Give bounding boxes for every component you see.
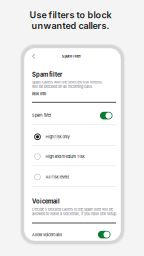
staticText: Spam filter xyxy=(32,113,52,118)
button[interactable]: High and medium risk xyxy=(32,147,116,166)
staticText: All risk levels xyxy=(45,175,69,179)
button[interactable]: Risk info xyxy=(32,91,46,96)
staticText: Decide if blocked callers to the spam fi… xyxy=(32,207,117,216)
staticText: Use filters to block xyxy=(29,9,111,20)
staticText: unwanted callers. xyxy=(31,20,109,31)
staticText: Risk info xyxy=(32,91,46,96)
staticText: High and medium risk xyxy=(45,154,84,159)
staticText: High risk only xyxy=(45,134,69,139)
button[interactable]: High risk only xyxy=(32,127,116,147)
staticText: Allow voicemails xyxy=(32,232,62,237)
staticText: Voicemail xyxy=(32,198,60,205)
button[interactable]: All risk levels xyxy=(32,167,116,187)
button[interactable]: Back xyxy=(29,52,38,61)
staticText: Spam filter xyxy=(61,54,81,59)
staticText: Spam filter xyxy=(32,71,62,78)
button[interactable]: Toggle xyxy=(98,231,110,238)
button[interactable]: Toggle xyxy=(100,112,112,119)
staticText: Spam callers with the selected risk leve… xyxy=(32,80,102,89)
